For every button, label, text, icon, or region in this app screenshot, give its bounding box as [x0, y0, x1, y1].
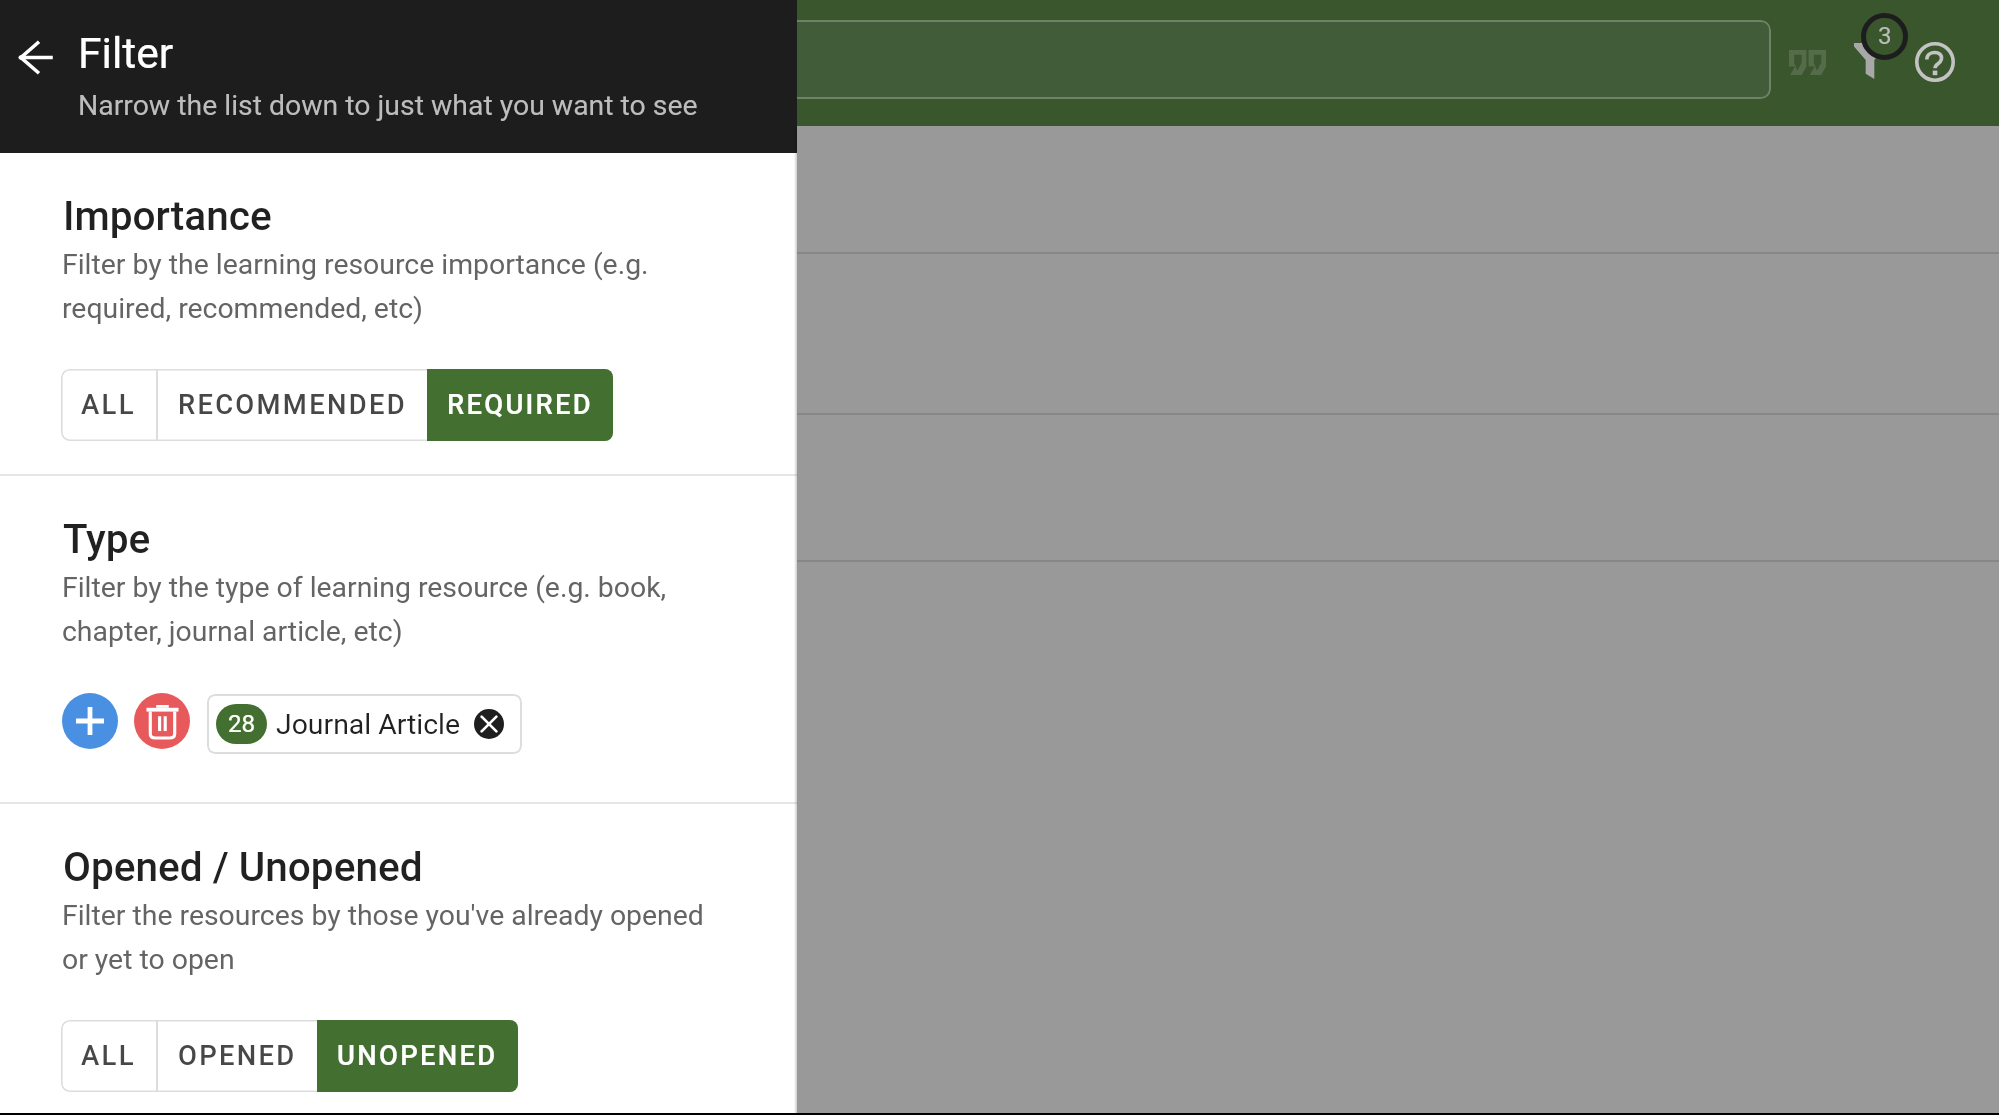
button[interactable]: Clear filters — [134, 693, 190, 749]
button[interactable]: 28 — [207, 694, 522, 754]
staticText: UNOPENED — [337, 1040, 498, 1072]
staticText: ALL — [81, 1040, 136, 1072]
staticText: Filter the resources by those you've alr… — [62, 899, 734, 976]
staticText: ALL — [81, 389, 136, 421]
button[interactable]: REQUIRED — [427, 369, 613, 441]
button[interactable]: ALL — [61, 1020, 156, 1092]
staticText: Filter by the learning resource importan… — [62, 248, 734, 325]
button[interactable]: Help — [1903, 30, 1967, 94]
staticText: Journal Article — [276, 708, 461, 741]
staticText: Narrow the list down to just what you wa… — [78, 89, 698, 122]
staticText: Opened / Unopened — [63, 843, 423, 890]
staticText: OPENED — [178, 1040, 297, 1072]
button[interactable]: Add filter — [62, 693, 118, 749]
staticText: 28 — [228, 710, 256, 738]
staticText: RECOMMENDED — [178, 389, 407, 421]
button[interactable]: ALL — [61, 369, 156, 441]
staticText: Type — [63, 515, 151, 562]
button[interactable]: Cite — [1775, 30, 1839, 94]
button[interactable]: UNOPENED — [317, 1020, 518, 1092]
staticText: Filter — [78, 28, 174, 78]
staticText: 3 — [1878, 22, 1892, 50]
staticText: Importance — [63, 192, 272, 239]
button[interactable]: Back — [4, 26, 66, 88]
button[interactable]: OPENED — [158, 1020, 317, 1092]
button[interactable]: Search — [180, 20, 1771, 99]
button[interactable]: Filter, 3 active — [1841, 5, 1921, 85]
staticText: Filter by the type of learning resource … — [62, 571, 734, 648]
button[interactable]: RECOMMENDED — [158, 369, 427, 441]
staticText: REQUIRED — [447, 389, 593, 421]
